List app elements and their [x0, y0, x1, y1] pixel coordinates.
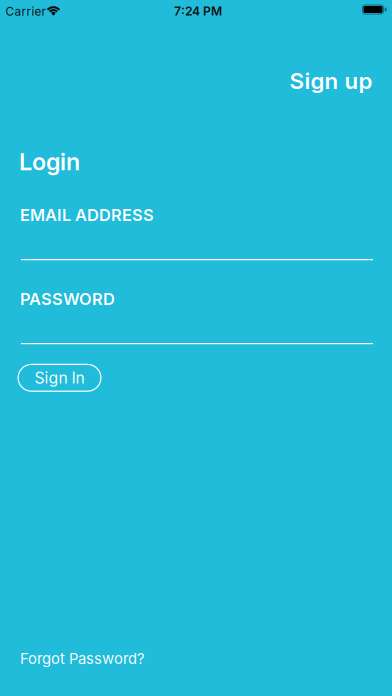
button[interactable]: Sign In — [17, 364, 101, 392]
staticText: PASSWORD — [20, 289, 115, 309]
staticText: Carrier — [6, 4, 46, 19]
staticText: Sign up — [289, 67, 372, 94]
staticText: Sign In — [34, 368, 84, 387]
staticText: Login — [19, 148, 80, 176]
staticText: 7:24 PM — [174, 4, 222, 18]
staticText: EMAIL ADDRESS — [20, 205, 154, 225]
button[interactable]: Sign up — [289, 67, 372, 94]
button[interactable]: Forgot Password? — [20, 650, 145, 667]
staticText: Forgot Password? — [20, 650, 145, 667]
